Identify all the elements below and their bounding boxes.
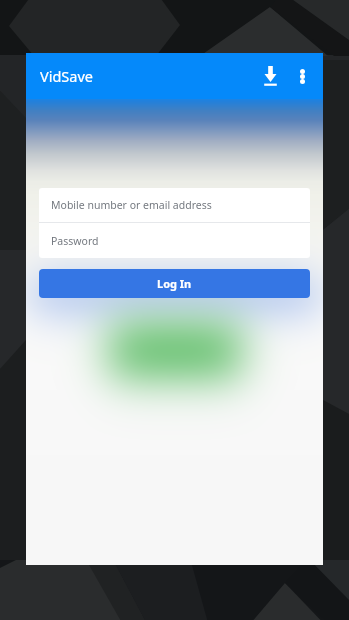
staticText: Log In (157, 276, 192, 291)
staticText: VidSave (40, 66, 93, 86)
button[interactable]: Mobile number or email address (39, 188, 310, 222)
button[interactable]: Password (39, 223, 310, 258)
button[interactable]: More options (287, 61, 317, 91)
button[interactable]: Download (253, 59, 287, 93)
staticText: Mobile number or email address (51, 198, 212, 212)
staticText: Password (51, 234, 99, 248)
button[interactable]: Log In (39, 269, 310, 298)
